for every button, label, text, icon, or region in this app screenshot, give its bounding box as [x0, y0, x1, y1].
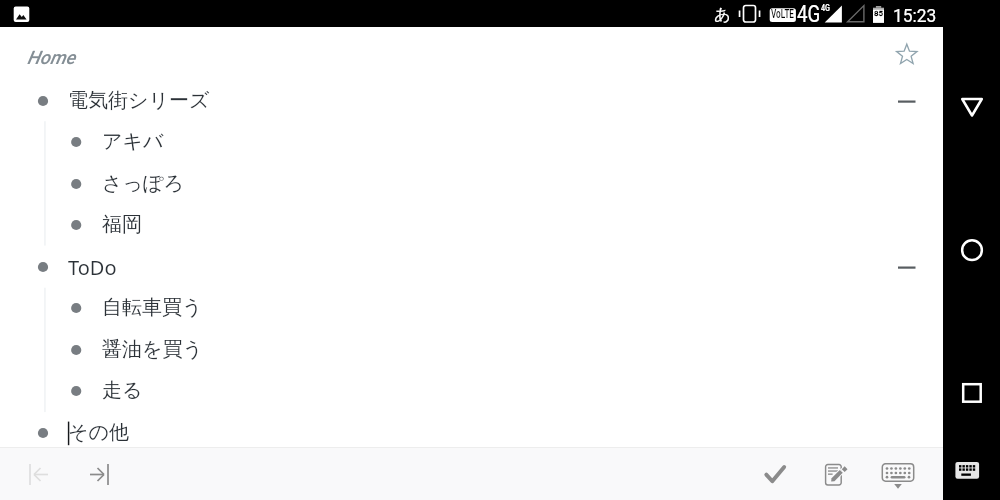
staticText: さっぽろ [102, 171, 184, 196]
button[interactable]: Done [753, 452, 797, 496]
staticText: 福岡 [102, 212, 142, 237]
staticText: 15:23 [893, 5, 937, 27]
staticText: ToDo [68, 254, 117, 281]
button[interactable]: 走る [0, 370, 943, 412]
button[interactable]: Outdent [16, 452, 60, 496]
button[interactable]: Favorite [883, 31, 931, 79]
button[interactable]: Recent apps [950, 371, 994, 415]
button[interactable]: Home [950, 228, 994, 272]
staticText: 85 [873, 9, 884, 18]
button[interactable]: Collapse [884, 246, 928, 288]
staticText: VoLTE [771, 6, 794, 21]
staticText: Home [27, 47, 76, 69]
button[interactable]: さっぽろ [0, 163, 943, 205]
button[interactable]: Collapse [884, 80, 928, 122]
button[interactable]: 自転車買う [0, 287, 943, 329]
staticText: 走る [102, 378, 143, 403]
button[interactable]: Back [950, 84, 994, 128]
button[interactable]: ToDo [0, 246, 943, 288]
button[interactable]: 電気街シリーズ [0, 80, 943, 122]
staticText: アキバ [102, 129, 164, 154]
button[interactable]: アキバ [0, 121, 943, 163]
button[interactable]: 醤油を買う [0, 329, 943, 371]
staticText: その他 [68, 420, 129, 445]
staticText: あ [714, 4, 731, 25]
staticText: 電気街シリーズ [68, 88, 210, 113]
button[interactable]: その他 [0, 412, 943, 447]
button[interactable]: Indent [77, 452, 121, 496]
staticText: 4G [821, 3, 831, 14]
staticText: 4G [797, 0, 820, 27]
button[interactable]: 福岡 [0, 204, 943, 246]
button[interactable]: Show keyboard [950, 448, 994, 492]
staticText: 自転車買う [102, 295, 203, 320]
button[interactable]: Hide keyboard [876, 452, 920, 496]
button[interactable]: Edit note [814, 452, 858, 496]
staticText: 醤油を買う [102, 337, 203, 362]
